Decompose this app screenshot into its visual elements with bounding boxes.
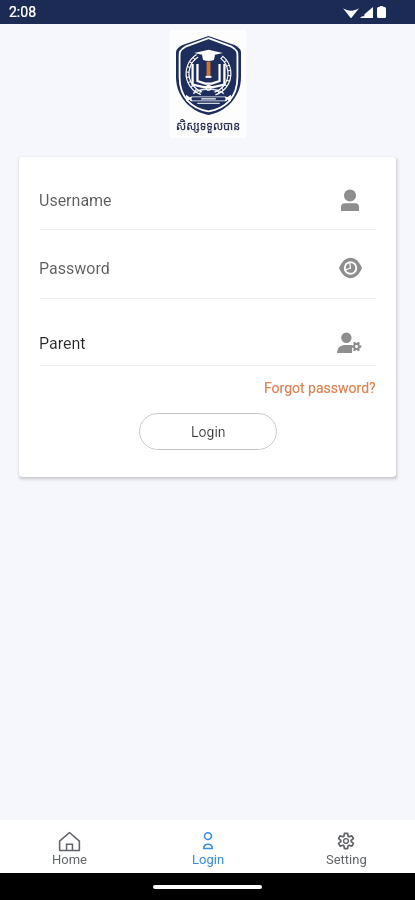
button[interactable]: Login	[139, 413, 277, 450]
button[interactable]: Show password	[336, 254, 364, 282]
staticText: Setting	[326, 852, 367, 867]
button[interactable]: Username	[336, 186, 364, 214]
staticText: 2:08	[9, 4, 36, 20]
staticText: Parent	[39, 334, 336, 353]
button[interactable]: Username	[39, 157, 376, 229]
staticText: Login	[192, 852, 225, 867]
button[interactable]: Parent	[39, 299, 376, 365]
button[interactable]: Password	[39, 230, 376, 298]
button[interactable]: Home	[0, 820, 139, 873]
staticText: Username	[39, 191, 336, 210]
staticText: Home	[52, 852, 87, 867]
button[interactable]: Forgot password?	[264, 379, 376, 397]
button[interactable]: Login	[139, 820, 277, 873]
staticText: Login	[191, 424, 226, 440]
button[interactable]: Select role	[336, 329, 364, 357]
staticText: សិស្សទទួលបាន	[176, 118, 241, 133]
staticText: Password	[39, 259, 336, 278]
button[interactable]: Setting	[277, 820, 415, 873]
